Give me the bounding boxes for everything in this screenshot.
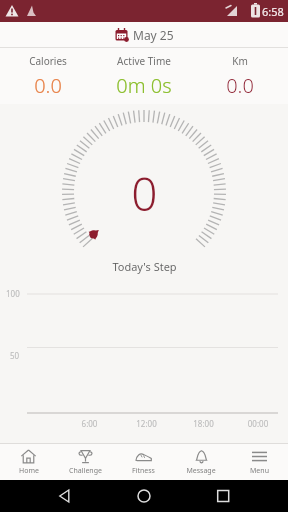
staticText: 18:00 [175, 418, 232, 429]
button[interactable]: Fitness [114, 444, 172, 480]
button[interactable]: May 25 [0, 22, 288, 47]
staticText: Km [232, 54, 248, 68]
button[interactable]: Menu [230, 444, 288, 480]
staticText: 100 [6, 288, 20, 299]
staticText: Message [186, 466, 216, 476]
staticText: Active Time [117, 54, 171, 68]
staticText: 6:58 [262, 4, 284, 19]
staticText: Home [19, 466, 39, 476]
staticText: 0.0 [34, 72, 62, 99]
staticText: Calories [29, 54, 67, 68]
button[interactable]: Message [172, 444, 230, 480]
button[interactable]: Calories [0, 48, 96, 104]
staticText: 12:00 [118, 418, 175, 429]
staticText: Menu [250, 466, 269, 476]
staticText: 0m 0s [116, 72, 172, 99]
button[interactable]: Km [192, 48, 288, 104]
staticText: Fitness [132, 466, 155, 476]
staticText: May 25 [133, 27, 174, 43]
button[interactable]: Challenge [57, 444, 114, 480]
staticText: 50 [10, 350, 20, 361]
staticText: 0.0 [226, 72, 254, 99]
staticText: Today's Step [112, 259, 177, 274]
staticText: 0 [131, 162, 158, 225]
staticText: 6:00 [61, 418, 118, 429]
button[interactable]: Active Time [96, 48, 192, 104]
button[interactable]: Home [0, 444, 57, 480]
staticText: 00:00 [232, 418, 284, 429]
staticText: Challenge [69, 466, 102, 476]
